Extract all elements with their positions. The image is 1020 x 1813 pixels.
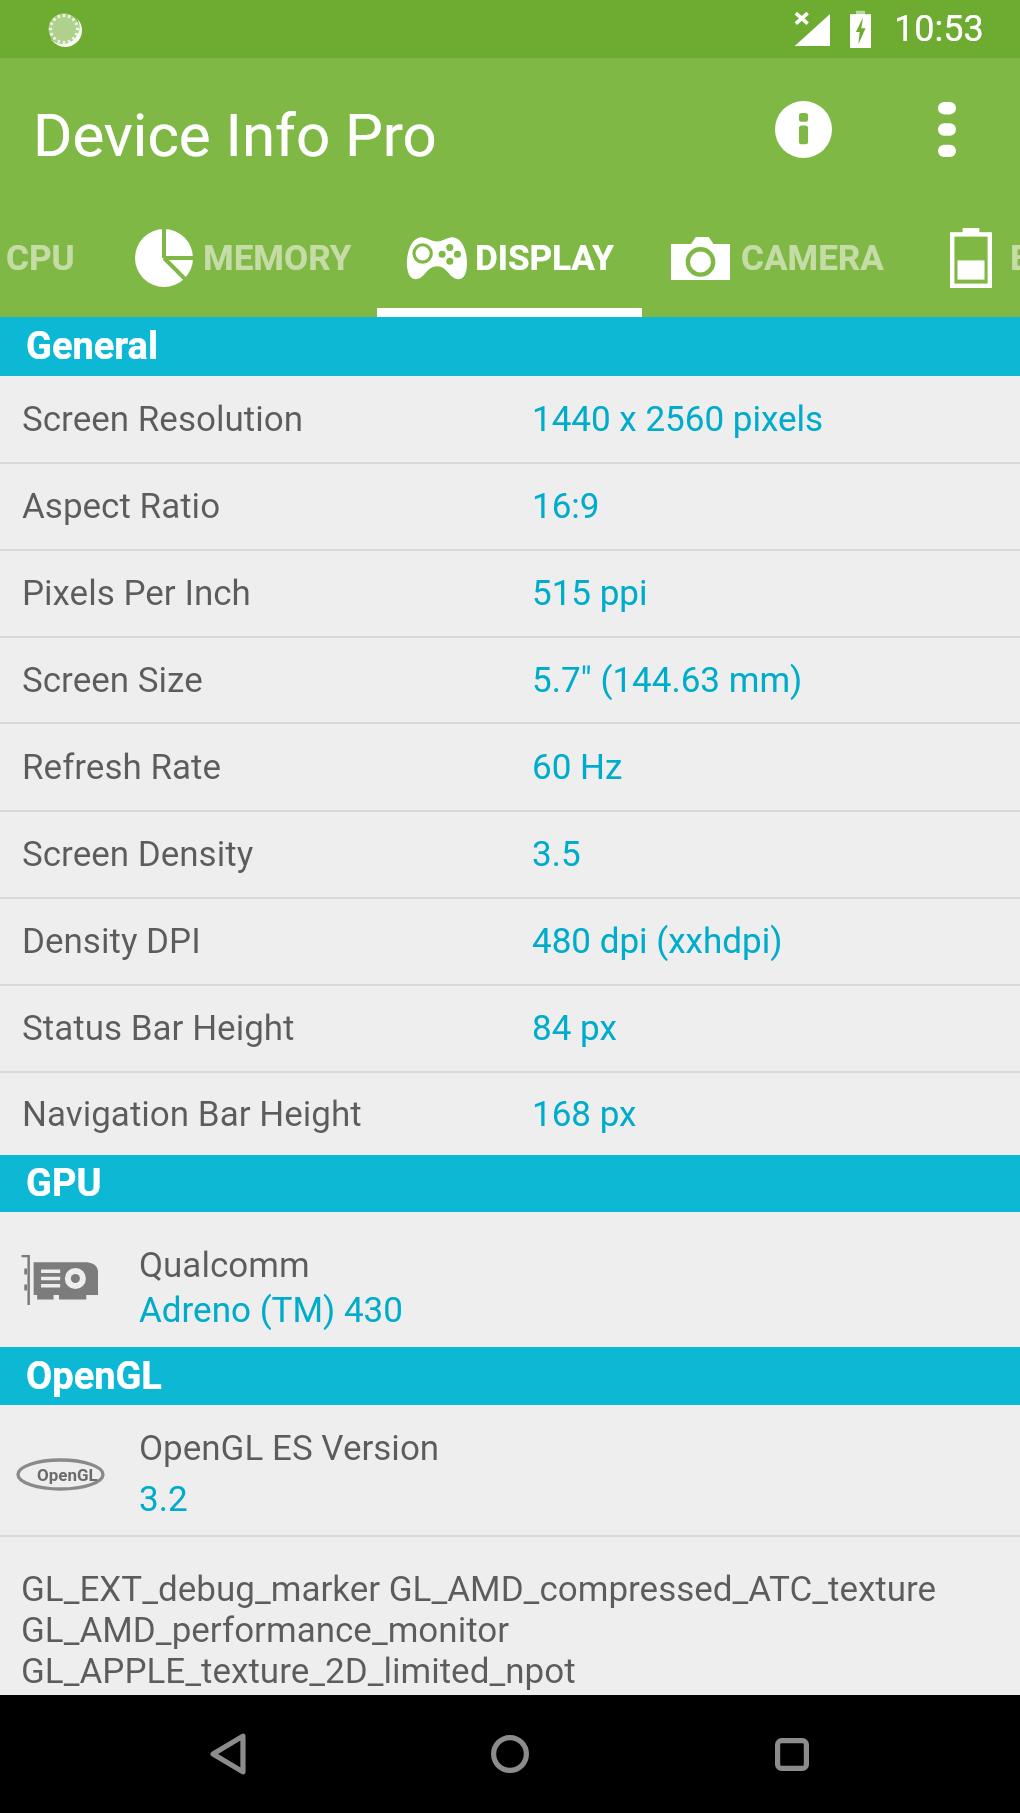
staticText: Status Bar Height	[22, 1008, 532, 1049]
button[interactable]: More options	[892, 74, 1002, 184]
button[interactable]: Home	[452, 1695, 567, 1813]
button[interactable]: Aspect Ratio	[0, 464, 1020, 549]
staticText: 60 Hz	[532, 747, 623, 788]
button[interactable]: BATTERY	[912, 211, 1020, 305]
staticText: GL_EXT_debug_marker GL_AMD_compressed_AT…	[21, 1569, 937, 1610]
staticText: GPU	[26, 1161, 102, 1206]
staticText: Density DPI	[22, 921, 532, 962]
staticText: Navigation Bar Height	[22, 1094, 532, 1135]
staticText: OpenGL ES Version	[139, 1428, 440, 1469]
staticText: Adreno (TM) 430	[139, 1290, 403, 1331]
staticText: 515 ppi	[532, 573, 648, 614]
staticText: GL_APPLE_texture_format_BGRA8888 GL_EXT_…	[21, 1692, 955, 1733]
button[interactable]: CPU	[0, 211, 104, 305]
button[interactable]: Status Bar Height	[0, 986, 1020, 1071]
staticText: OpenGL	[26, 1354, 162, 1399]
button[interactable]: Info	[748, 74, 858, 184]
staticText: GL_AMD_performance_monitor	[21, 1610, 510, 1651]
staticText: 1440 x 2560 pixels	[532, 399, 824, 440]
button[interactable]: DISPLAY	[377, 211, 642, 305]
staticText: MEMORY	[203, 238, 352, 279]
staticText: Screen Size	[22, 660, 532, 701]
staticText: 3.5	[532, 834, 581, 875]
staticText: Screen Resolution	[22, 399, 532, 440]
staticText: 10:53	[894, 8, 984, 50]
staticText: Device Info Pro	[33, 100, 437, 170]
staticText: 84 px	[532, 1008, 617, 1049]
button[interactable]: OpenGL	[0, 1405, 1020, 1535]
button[interactable]: Screen Density	[0, 812, 1020, 897]
staticText: Aspect Ratio	[22, 486, 532, 527]
staticText: 3.2	[139, 1479, 188, 1520]
staticText: General	[26, 324, 159, 369]
staticText: OpenGL	[37, 1465, 98, 1485]
button[interactable]: Density DPI	[0, 899, 1020, 984]
staticText: 16:9	[532, 486, 600, 527]
staticText: 5.7" (144.63 mm)	[532, 660, 803, 701]
staticText: CAMERA	[741, 238, 884, 279]
staticText: DISPLAY	[475, 238, 615, 279]
button[interactable]: CAMERA	[642, 211, 912, 305]
button[interactable]: Screen Size	[0, 638, 1020, 722]
staticText: CPU	[6, 238, 75, 279]
button[interactable]: MEMORY	[107, 211, 379, 305]
button[interactable]: Recent apps	[734, 1695, 849, 1813]
staticText: Qualcomm	[139, 1245, 310, 1286]
staticText: BATTERY	[1010, 238, 1020, 279]
staticText: 168 px	[532, 1094, 637, 1135]
staticText: 480 dpi (xxhdpi)	[532, 921, 783, 962]
button[interactable]: Pixels Per Inch	[0, 551, 1020, 636]
staticText: Screen Density	[22, 834, 532, 875]
staticText: Pixels Per Inch	[22, 573, 532, 614]
staticText: GL_APPLE_texture_2D_limited_npot	[21, 1651, 576, 1692]
button[interactable]: Qualcomm	[0, 1212, 1020, 1347]
button[interactable]: Refresh Rate	[0, 724, 1020, 810]
staticText: Refresh Rate	[22, 747, 532, 788]
button[interactable]: Navigation Bar Height	[0, 1073, 1020, 1155]
button[interactable]: Screen Resolution	[0, 376, 1020, 462]
button[interactable]: Back	[170, 1695, 285, 1813]
